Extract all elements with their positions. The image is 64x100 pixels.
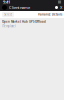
button[interactable]: Close bbox=[60, 5, 62, 10]
staticText: lll bbox=[58, 0, 61, 5]
staticText: (Template) bbox=[2, 24, 16, 28]
staticText: Select bbox=[4, 13, 12, 16]
staticText: 9:41 bbox=[3, 0, 10, 5]
staticText: Variance Details bbox=[38, 13, 62, 16]
button[interactable]: Settings bbox=[55, 6, 58, 9]
staticText: Open Market Hub UPS Offload bbox=[2, 20, 46, 23]
staticText: X bbox=[60, 5, 62, 10]
staticText: Client name bbox=[9, 5, 30, 10]
